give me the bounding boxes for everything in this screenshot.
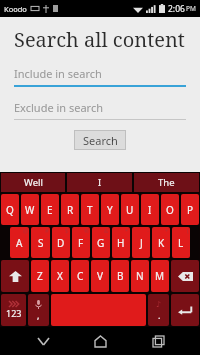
button[interactable]: Punctuation: [148, 294, 169, 326]
staticText: 1: [14, 194, 18, 201]
staticText: (: [187, 227, 189, 234]
staticText: /: [145, 260, 148, 267]
button[interactable]: Backspace: [171, 260, 199, 292]
button[interactable]: #: [31, 227, 50, 258]
staticText: C: [77, 269, 84, 283]
staticText: R: [67, 203, 74, 217]
staticText: The: [158, 176, 175, 189]
button[interactable]: The: [134, 173, 199, 192]
button[interactable]: 9: [161, 194, 179, 225]
button[interactable]: /: [131, 260, 149, 292]
staticText: ": [85, 260, 88, 267]
staticText: H: [117, 236, 125, 250]
button[interactable]: :: [91, 260, 109, 292]
button[interactable]: Well: [1, 173, 65, 192]
staticText: -: [147, 227, 149, 234]
button[interactable]: !: [31, 260, 49, 292]
button[interactable]: Voice input: [28, 294, 49, 326]
staticText: I: [148, 203, 152, 217]
button[interactable]: 5: [81, 194, 99, 225]
staticText: +: [165, 227, 169, 234]
staticText: 123: [6, 307, 22, 319]
staticText: &: [104, 227, 109, 234]
button[interactable]: $: [52, 227, 70, 258]
button[interactable]: 7: [121, 194, 139, 225]
staticText: \: [165, 260, 168, 267]
staticText: D: [57, 236, 65, 250]
staticText: PM: [186, 4, 196, 13]
staticText: 9: [174, 194, 178, 201]
staticText: Z: [37, 269, 43, 283]
button[interactable]: &: [92, 227, 110, 258]
button[interactable]: 6: [101, 194, 119, 225]
staticText: ,: [37, 309, 40, 321]
staticText: U: [126, 203, 134, 217]
staticText: 3: [54, 194, 58, 201]
staticText: B: [117, 269, 124, 283]
staticText: G: [97, 236, 105, 250]
button[interactable]: Include in search: [14, 66, 186, 87]
button[interactable]: Exclude in search: [14, 100, 186, 120]
button[interactable]: Recents: [143, 327, 173, 355]
staticText: I: [98, 176, 102, 189]
button[interactable]: (: [172, 227, 190, 258]
button[interactable]: Symbols: [1, 294, 26, 326]
staticText: O: [166, 203, 174, 217]
staticText: X: [57, 269, 63, 283]
button[interactable]: *: [112, 227, 130, 258]
button[interactable]: 2: [21, 194, 39, 225]
staticText: W: [25, 203, 35, 217]
staticText: Search: [83, 133, 118, 148]
staticText: P: [187, 203, 194, 217]
staticText: ♪: [156, 300, 162, 309]
button[interactable]: 4: [61, 194, 79, 225]
staticText: .: [158, 309, 161, 321]
button[interactable]: Hide keyboard: [28, 327, 58, 355]
button[interactable]: Space: [51, 294, 146, 326]
staticText: 2:06: [168, 3, 185, 15]
button[interactable]: Enter: [171, 294, 199, 326]
staticText: A: [16, 236, 23, 250]
staticText: J: [140, 236, 143, 250]
staticText: 8: [154, 194, 158, 201]
staticText: Koodo: [4, 4, 27, 14]
staticText: E: [47, 203, 53, 217]
staticText: Well: [24, 176, 43, 189]
button[interactable]: 1: [1, 194, 19, 225]
staticText: 4: [74, 194, 78, 201]
button[interactable]: +: [152, 227, 170, 258]
staticText: N: [136, 269, 144, 283]
button[interactable]: ?: [51, 260, 69, 292]
staticText: T: [87, 203, 93, 217]
button[interactable]: ;: [111, 260, 129, 292]
staticText: 2: [34, 194, 38, 201]
staticText: 7: [134, 194, 138, 201]
staticText: M: [155, 269, 165, 283]
button[interactable]: Search: [74, 130, 126, 150]
staticText: Y: [107, 203, 113, 217]
staticText: *: [125, 227, 129, 234]
button[interactable]: -: [132, 227, 150, 258]
staticText: @: [23, 227, 28, 234]
staticText: Exclude in search: [14, 100, 104, 115]
staticText: 5: [94, 194, 98, 201]
button[interactable]: 8: [141, 194, 159, 225]
staticText: Search all content: [14, 26, 185, 53]
button[interactable]: 3: [41, 194, 59, 225]
button[interactable]: Home: [85, 327, 115, 355]
button[interactable]: 0: [181, 194, 199, 225]
button[interactable]: I: [67, 173, 132, 192]
button[interactable]: ": [71, 260, 89, 292]
button[interactable]: Shift: [1, 260, 29, 292]
staticText: F: [78, 236, 84, 250]
button[interactable]: @: [10, 227, 29, 258]
button[interactable]: \: [151, 260, 169, 292]
staticText: !: [46, 260, 48, 267]
staticText: ;: [126, 260, 128, 267]
staticText: Q: [6, 203, 14, 217]
staticText: ?: [65, 260, 68, 267]
button[interactable]: %: [72, 227, 90, 258]
staticText: %: [84, 227, 89, 234]
staticText: K: [158, 236, 165, 250]
staticText: 6: [114, 194, 118, 201]
